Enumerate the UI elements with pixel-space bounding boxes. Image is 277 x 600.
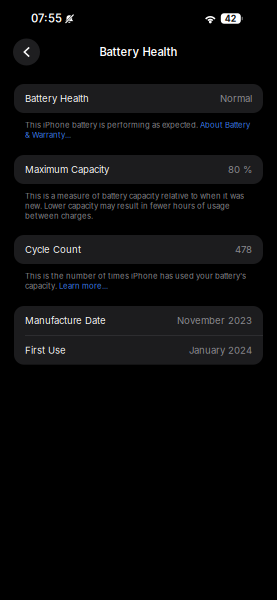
- staticText: This is a measure of battery capacity re…: [25, 191, 244, 201]
- staticText: Cycle Count: [25, 244, 81, 255]
- staticText: 478: [235, 244, 252, 255]
- staticText: First Use: [25, 344, 66, 356]
- staticText: This is the number of times iPhone has u…: [25, 271, 246, 281]
- button[interactable]: Cycle Count: [14, 235, 263, 264]
- staticText: between charges.: [25, 211, 93, 221]
- staticText: 42: [225, 13, 237, 24]
- button[interactable]: Maximum Capacity: [14, 155, 263, 184]
- button[interactable]: First Use: [14, 336, 263, 365]
- button[interactable]: Back: [13, 38, 40, 65]
- staticText: November 2023: [177, 315, 252, 326]
- staticText: Normal: [220, 93, 252, 104]
- staticText: 80 %: [228, 164, 252, 175]
- staticText: new. Lower capacity may result in fewer …: [25, 201, 230, 211]
- button[interactable]: Manufacture Date: [14, 306, 263, 335]
- staticText: Learn more...: [59, 281, 108, 291]
- staticText: Manufacture Date: [25, 315, 106, 326]
- staticText: About Battery: [200, 120, 250, 130]
- staticText: Battery Health: [99, 45, 177, 59]
- staticText: 07:55: [31, 12, 62, 25]
- staticText: January 2024: [189, 344, 252, 356]
- button[interactable]: Battery Health: [14, 84, 263, 113]
- staticText: & Warranty...: [25, 130, 71, 140]
- staticText: This iPhone battery is performing as exp…: [25, 120, 200, 130]
- staticText: Battery Health: [25, 93, 89, 104]
- staticText: capacity.: [25, 281, 59, 291]
- staticText: Maximum Capacity: [25, 164, 109, 175]
